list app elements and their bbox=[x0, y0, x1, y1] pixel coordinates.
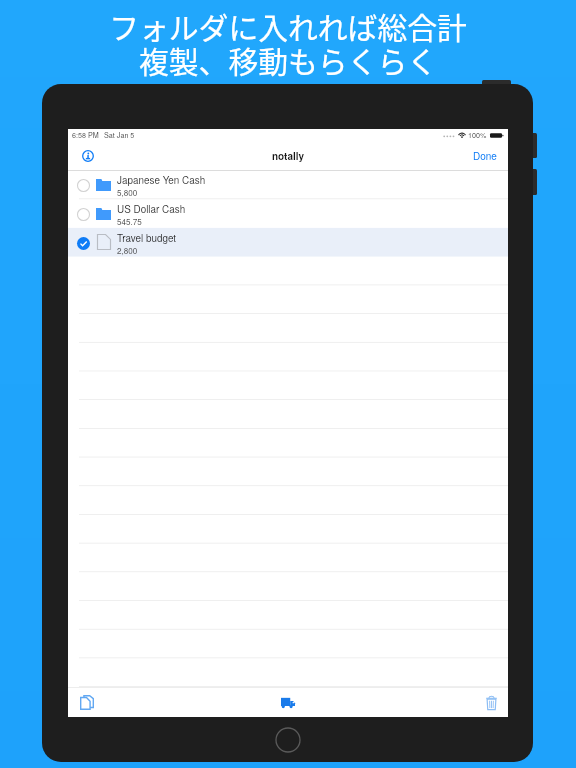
staticText: Japanese Yen Cash bbox=[117, 173, 206, 187]
button[interactable]: Move bbox=[280, 694, 296, 710]
staticText: 6:58 PM bbox=[72, 130, 99, 140]
staticText: Sat Jan 5 bbox=[104, 130, 135, 140]
staticText: フォルダに入れれば総合計 複製、移動もらくらく bbox=[109, 4, 467, 81]
staticText: notally bbox=[272, 149, 305, 163]
button[interactable]: Info bbox=[79, 147, 97, 165]
button[interactable]: Japanese Yen Cash bbox=[68, 171, 508, 200]
button[interactable]: US Dollar Cash bbox=[68, 200, 508, 229]
staticText: 2,800 bbox=[117, 245, 138, 257]
staticText: Done bbox=[473, 149, 497, 163]
staticText: 545.75 bbox=[117, 216, 142, 228]
button[interactable]: Duplicate bbox=[79, 694, 95, 710]
button[interactable]: Done bbox=[473, 149, 497, 163]
staticText: 5,800 bbox=[117, 187, 138, 199]
button[interactable]: Travel budget bbox=[68, 229, 508, 258]
button[interactable]: Delete bbox=[481, 694, 497, 711]
staticText: 100% bbox=[468, 130, 487, 140]
staticText: US Dollar Cash bbox=[117, 202, 186, 216]
staticText: Travel budget bbox=[117, 231, 177, 245]
